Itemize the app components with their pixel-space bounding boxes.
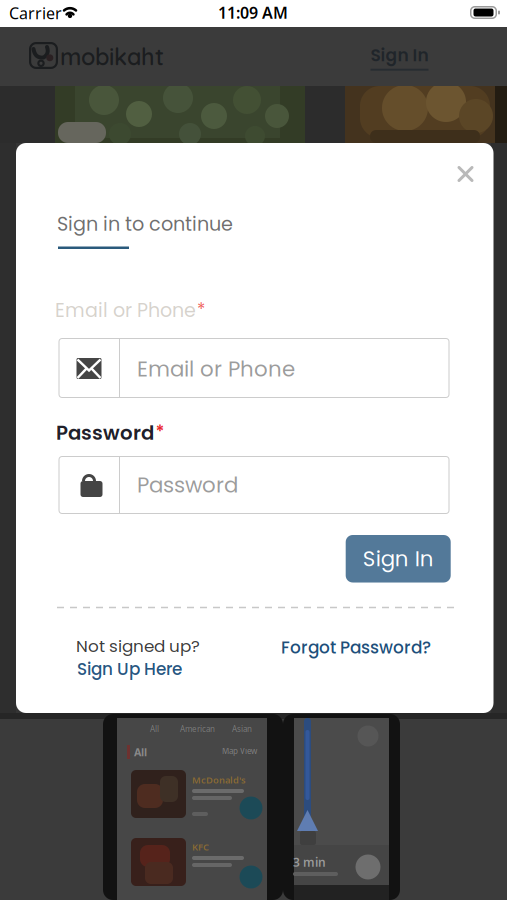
staticText: Password [56, 419, 154, 447]
staticText: * [155, 419, 164, 443]
staticText: 11:09 AM [218, 2, 288, 23]
staticText: Sign In [370, 43, 428, 67]
button[interactable]: Sign In [361, 35, 437, 79]
staticText: Forgot Password? [281, 636, 431, 659]
button[interactable]: Sign Up Here [59, 656, 199, 682]
staticText: Password [137, 470, 238, 500]
staticText: * [197, 297, 205, 321]
staticText: Sign Up Here [77, 657, 182, 681]
staticText: Carrier [9, 2, 62, 24]
staticText: Not signed up? [76, 634, 200, 658]
staticText: KFC [192, 841, 209, 853]
staticText: Asian [232, 724, 252, 734]
staticText: Map View [222, 746, 257, 756]
button[interactable]: Sign In [346, 535, 451, 582]
staticText: 3 min [293, 854, 326, 870]
staticText: Sign In [363, 544, 434, 574]
button[interactable]: Forgot Password? [271, 634, 441, 660]
staticText: American [180, 724, 215, 734]
staticText: McDonald's [192, 774, 246, 786]
staticText: All [150, 724, 159, 734]
staticText: Email or Phone [137, 354, 295, 384]
staticText: Sign in to continue [57, 211, 233, 237]
staticText: mobikaht [60, 42, 164, 71]
staticText: All [134, 745, 147, 759]
button[interactable]: Close [0, 0, 507, 900]
staticText: Email or Phone [55, 297, 196, 324]
